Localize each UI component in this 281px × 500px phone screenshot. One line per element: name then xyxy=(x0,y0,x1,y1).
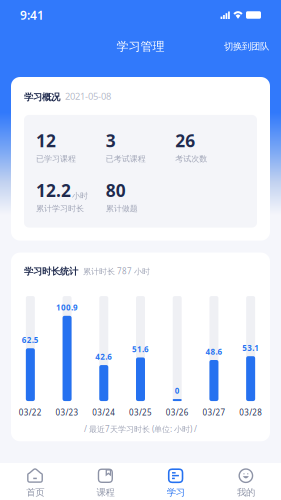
button[interactable]: 课程 xyxy=(70,464,140,500)
staticText: 03/22 xyxy=(19,407,42,418)
staticText: 51.6 xyxy=(132,344,149,354)
staticText: 03/24 xyxy=(92,407,115,418)
staticText: 课程 xyxy=(96,487,114,498)
button[interactable]: 切换到团队 xyxy=(212,35,281,58)
staticText: 62.5 xyxy=(22,335,39,345)
staticText: 3 xyxy=(106,129,116,152)
staticText: 学习概况 xyxy=(24,91,60,103)
staticText: 80 xyxy=(106,179,126,202)
staticText: 学习时长统计 xyxy=(24,266,78,277)
staticText: 小时 xyxy=(72,191,88,201)
staticText: 学习管理 xyxy=(116,39,164,54)
button[interactable]: 首页 xyxy=(0,464,70,500)
staticText: 累计学习时长 xyxy=(36,204,84,214)
staticText: 26 xyxy=(175,129,195,152)
staticText: 12.2 xyxy=(36,179,71,202)
staticText: 03/25 xyxy=(129,407,152,418)
staticText: 03/27 xyxy=(202,407,225,418)
staticText: 累计时长 787 小时 xyxy=(83,266,150,276)
staticText: 12 xyxy=(36,129,56,152)
staticText: 2021-05-08 xyxy=(65,90,111,102)
button[interactable]: 学习 xyxy=(140,464,211,500)
staticText: 我的 xyxy=(237,487,255,498)
staticText: 0 xyxy=(175,385,180,396)
staticText: 累计做题 xyxy=(106,204,138,214)
staticText: 100.9 xyxy=(56,302,78,313)
staticText: 53.1 xyxy=(242,343,259,353)
staticText: 学习 xyxy=(167,487,185,498)
button[interactable]: 我的 xyxy=(211,464,281,500)
staticText: 已考试课程 xyxy=(106,154,146,164)
staticText: 03/26 xyxy=(166,407,189,418)
staticText: 03/28 xyxy=(239,407,262,418)
staticText: 42.6 xyxy=(95,351,112,362)
staticText: 已学习课程 xyxy=(36,154,76,164)
staticText: 考试次数 xyxy=(175,154,207,164)
staticText: 48.6 xyxy=(205,346,222,357)
staticText: 9:41 xyxy=(20,7,44,23)
staticText: 03/23 xyxy=(56,407,79,418)
staticText: 切换到团队 xyxy=(224,41,269,52)
staticText: 首页 xyxy=(26,487,44,498)
staticText: / 最近7天学习时长 (单位: 小时) / xyxy=(84,424,197,434)
